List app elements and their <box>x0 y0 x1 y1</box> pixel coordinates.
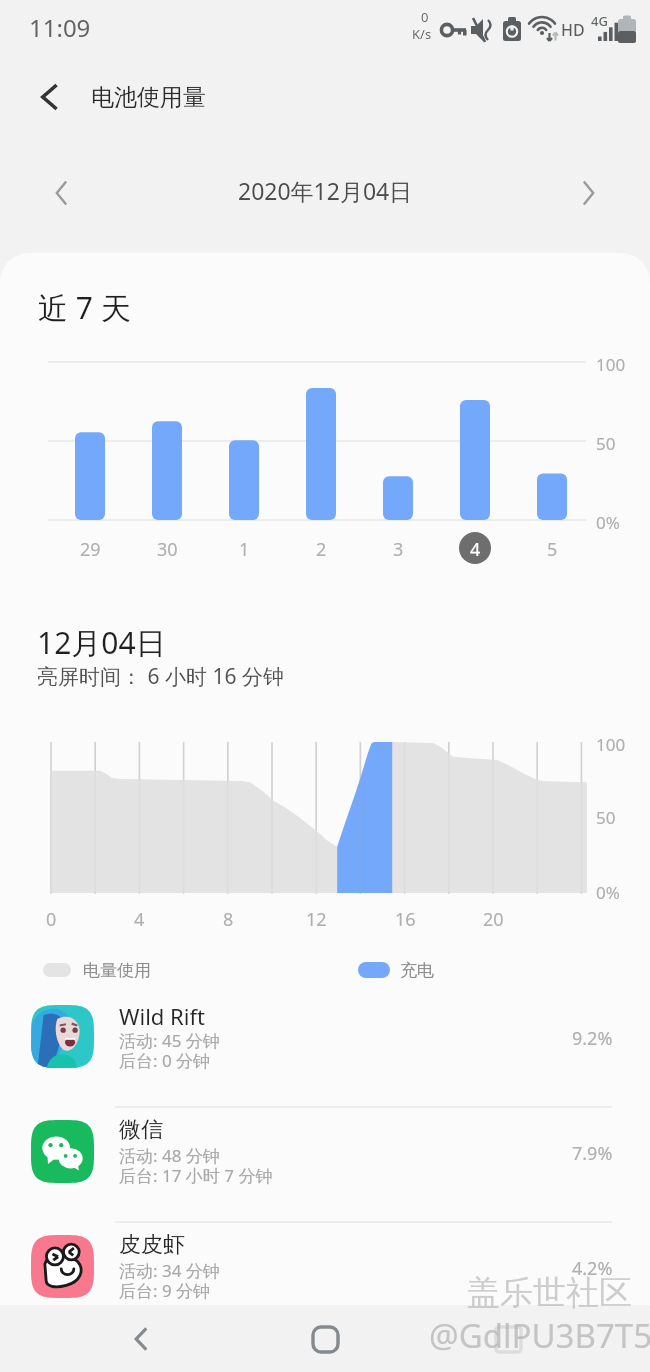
staticText: @GdlPU3B7T5 <box>429 1313 650 1358</box>
staticText: 5 <box>547 537 558 562</box>
staticText: 7.9% <box>572 1141 613 1166</box>
staticText: 4.2% <box>572 1256 613 1281</box>
staticText: HD <box>561 19 585 41</box>
staticText: 12月04日 <box>37 622 166 663</box>
staticText: 4 <box>470 537 481 562</box>
staticText: 亮屏时间： 6 小时 16 分钟 <box>37 662 284 691</box>
staticText: 30 <box>157 537 178 562</box>
staticText: 50 <box>596 806 616 829</box>
button[interactable]: Recents <box>478 1309 538 1369</box>
staticText: 20 <box>483 907 504 932</box>
staticText: 8 <box>223 907 234 932</box>
staticText: 后台: 17 小时 7 分钟 <box>119 1164 273 1187</box>
staticText: 3 <box>393 537 404 562</box>
staticText: 12 <box>306 907 327 932</box>
staticText: 4 <box>134 907 145 932</box>
button[interactable]: 微信 <box>0 1115 650 1230</box>
staticText: 皮皮虾 <box>119 1231 185 1259</box>
staticText: 100 <box>596 353 626 376</box>
button[interactable]: Wild Rift <box>0 1000 650 1115</box>
staticText: 50 <box>596 432 616 455</box>
staticText: 2020年12月04日 <box>238 175 413 206</box>
staticText: 1 <box>239 537 250 562</box>
button[interactable]: 皮皮虾 <box>0 1230 650 1345</box>
staticText: 微信 <box>119 1116 163 1144</box>
button[interactable]: Back <box>18 65 82 129</box>
staticText: 活动: 48 分钟 <box>119 1144 220 1167</box>
staticText: 9.2% <box>572 1026 613 1051</box>
staticText: 电量使用 <box>83 960 151 981</box>
button[interactable]: Home <box>295 1309 355 1369</box>
button[interactable]: Back <box>111 1309 171 1369</box>
staticText: 活动: 45 分钟 <box>119 1029 220 1052</box>
staticText: 4G <box>591 12 608 30</box>
staticText: 0 <box>46 907 57 932</box>
staticText: 后台: 9 分钟 <box>119 1279 211 1302</box>
staticText: 电池使用量 <box>91 83 206 112</box>
staticText: 0% <box>596 881 620 904</box>
staticText: 29 <box>80 537 101 562</box>
staticText: 16 <box>395 907 416 932</box>
button[interactable]: Previous day <box>32 163 92 223</box>
button[interactable]: Next day <box>558 163 618 223</box>
staticText: 100 <box>596 733 626 756</box>
staticText: 0 <box>421 8 429 26</box>
staticText: Wild Rift <box>119 1001 205 1031</box>
staticText: 活动: 34 分钟 <box>119 1259 220 1282</box>
staticText: 0% <box>596 511 620 534</box>
staticText: 近 7 天 <box>38 287 131 328</box>
staticText: 充电 <box>400 960 434 981</box>
staticText: 后台: 0 分钟 <box>119 1049 211 1072</box>
staticText: K/s <box>412 25 432 43</box>
staticText: 11:09 <box>29 11 91 44</box>
staticText: 2 <box>316 537 327 562</box>
staticText: 盖乐世社区 <box>467 1272 632 1314</box>
